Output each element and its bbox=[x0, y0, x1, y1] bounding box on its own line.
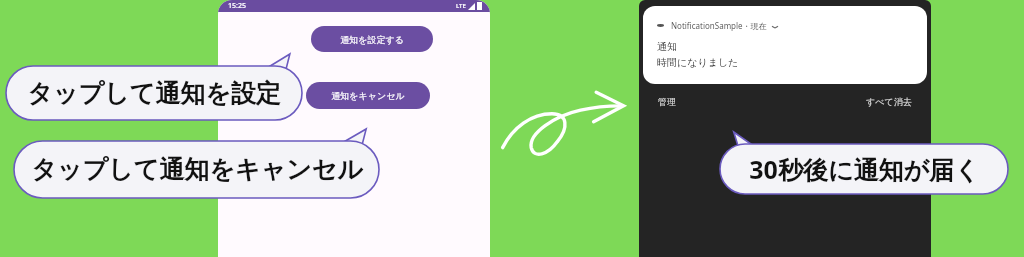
button[interactable]: 通知を設定する bbox=[311, 26, 433, 52]
button[interactable]: すべて消去 bbox=[864, 94, 914, 109]
button[interactable]: 管理 bbox=[656, 94, 678, 109]
staticText: 通知を設定する bbox=[340, 34, 404, 45]
staticText: タップして通知をキャンセル bbox=[31, 154, 363, 185]
staticText: 管理 bbox=[658, 96, 676, 107]
button[interactable]: 通知をキャンセル bbox=[306, 82, 430, 109]
staticText: 通知 bbox=[657, 40, 677, 53]
staticText: 時間になりました bbox=[657, 56, 739, 69]
staticText: 通知をキャンセル bbox=[331, 90, 405, 101]
staticText: NotificationSample・現在 bbox=[671, 20, 767, 31]
staticText: 15:25 bbox=[228, 1, 246, 11]
button[interactable]: NotificationSample・現在 bbox=[643, 6, 927, 84]
other: Arrow bbox=[500, 90, 630, 162]
staticText: 30秒後に通知が届く bbox=[749, 152, 980, 186]
staticText: すべて消去 bbox=[866, 96, 912, 107]
staticText: LTE bbox=[456, 2, 466, 10]
staticText: タップして通知を設定 bbox=[27, 78, 281, 109]
